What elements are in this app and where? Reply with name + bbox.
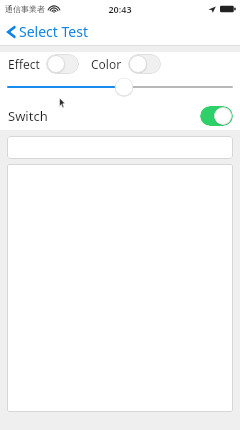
button[interactable]: Text field [7, 136, 233, 159]
button[interactable]: Toggle off [128, 54, 161, 74]
button[interactable]: Toggle off [46, 54, 79, 74]
button[interactable]: Slider [0, 76, 240, 102]
staticText: Color [91, 56, 122, 72]
staticText: Select Test [19, 22, 88, 41]
button[interactable]: Content area [7, 164, 233, 412]
button[interactable]: Select Test [4, 20, 91, 43]
staticText: Effect [8, 56, 40, 72]
staticText: 20:43 [108, 3, 132, 15]
staticText: 通信事業者 [5, 4, 45, 14]
button[interactable]: Toggle on [200, 106, 233, 126]
staticText: Switch [8, 107, 48, 125]
